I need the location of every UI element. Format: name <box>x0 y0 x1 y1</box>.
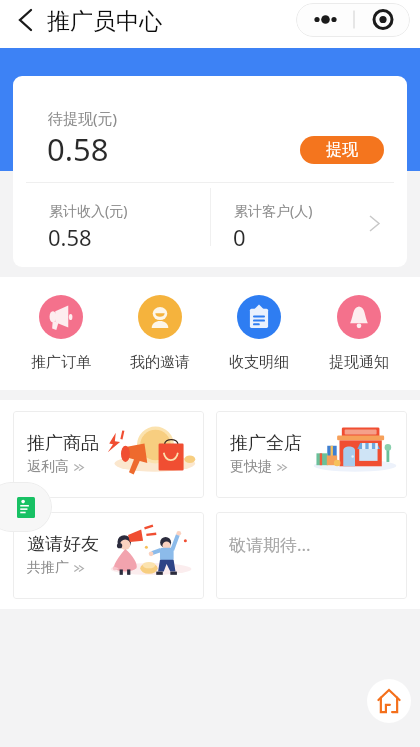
staticText: 0 <box>233 222 246 252</box>
staticText: 推广全店 <box>230 432 302 455</box>
button[interactable]: Back <box>8 3 42 37</box>
staticText: 推广订单 <box>31 353 91 372</box>
button[interactable]: 我的邀请 <box>110 277 209 390</box>
staticText: 推广商品 <box>27 432 99 455</box>
staticText: 待提现(元) <box>48 108 118 128</box>
button[interactable]: Home <box>367 679 411 723</box>
staticText: 敬请期待... <box>229 533 311 556</box>
staticText: 累计收入(元) <box>49 201 128 220</box>
staticText: 更快捷 <box>230 458 272 476</box>
staticText: 提现 <box>326 140 358 160</box>
staticText: 邀请好友 <box>27 533 99 556</box>
button[interactable]: 累计收入(元) <box>13 183 407 267</box>
button[interactable]: 提现通知 <box>309 277 409 390</box>
staticText: 0.58 <box>47 128 109 170</box>
button[interactable]: 推广订单 <box>11 277 110 390</box>
staticText: 我的邀请 <box>130 353 190 372</box>
staticText: 推广员中心 <box>47 7 162 36</box>
button[interactable]: 邀请好友 <box>13 512 204 599</box>
staticText: 共推广 <box>27 559 69 577</box>
staticText: 0.58 <box>48 222 92 252</box>
staticText: 累计客户(人) <box>234 201 313 220</box>
staticText: 收支明细 <box>229 353 289 372</box>
button[interactable]: 待提现(元) <box>13 76 407 182</box>
button[interactable]: 提现 <box>300 136 384 164</box>
button[interactable]: 敬请期待... <box>216 512 407 599</box>
staticText: 返利高 <box>27 458 69 476</box>
button[interactable]: 收支明细 <box>209 277 309 390</box>
button[interactable]: More options <box>296 3 410 37</box>
button[interactable]: 推广全店 <box>216 411 407 498</box>
staticText: 提现通知 <box>329 353 389 372</box>
button[interactable]: 推广商品 <box>13 411 204 498</box>
button[interactable]: Customer service <box>0 482 52 532</box>
